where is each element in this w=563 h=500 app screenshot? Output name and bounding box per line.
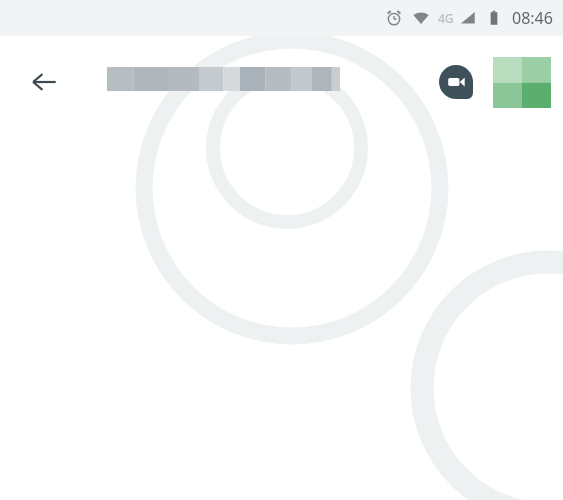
button[interactable]: Video call <box>434 60 478 104</box>
staticText: 08:46 <box>512 7 553 29</box>
button[interactable]: App logo <box>493 57 551 108</box>
button[interactable]: Conversation title <box>107 67 340 91</box>
staticText: 4G <box>438 10 454 26</box>
button[interactable]: Back <box>22 60 66 104</box>
